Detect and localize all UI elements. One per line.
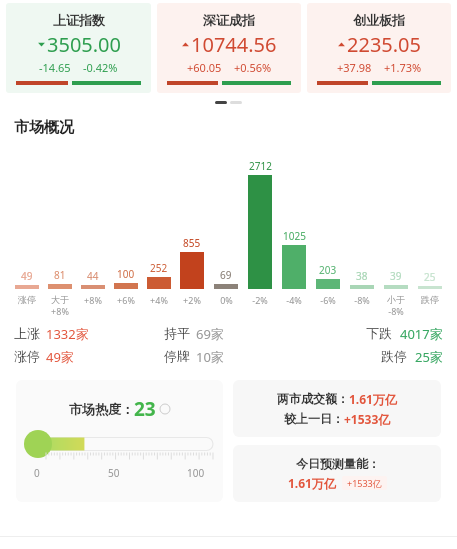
staticText: -8% xyxy=(388,305,404,317)
button[interactable]: 市场热度： xyxy=(16,380,223,502)
staticText: 创业板指 xyxy=(353,12,405,28)
staticText: +8% xyxy=(51,305,69,317)
staticText: -8% xyxy=(354,294,370,306)
staticText: 1025 xyxy=(283,229,306,243)
staticText: 今日预测量能： xyxy=(296,456,380,471)
staticText: -0.42% xyxy=(83,60,118,75)
staticText: 2712 xyxy=(249,159,272,173)
staticText: 3505.00 xyxy=(47,31,121,58)
staticText: 两市成交额： xyxy=(277,391,349,406)
staticText: +1533亿 xyxy=(344,411,391,427)
staticText: 涨停 xyxy=(18,294,36,305)
staticText: 跌停 xyxy=(381,348,407,364)
staticText: 23 xyxy=(134,396,156,422)
staticText: 50 xyxy=(108,466,120,480)
staticText: -4% xyxy=(286,294,302,306)
staticText: 上证指数 xyxy=(53,12,105,28)
staticText: 1332家 xyxy=(46,325,89,343)
staticText: 0 xyxy=(34,466,40,480)
staticText: +1533亿 xyxy=(347,477,382,489)
staticText: 0% xyxy=(220,294,233,306)
staticText: 855 xyxy=(183,236,201,250)
staticText: 上涨 xyxy=(14,325,40,341)
staticText: 25家 xyxy=(415,348,443,366)
staticText: 69家 xyxy=(196,325,224,343)
staticText: +6% xyxy=(117,294,135,306)
staticText: 1.61万亿 xyxy=(349,391,397,407)
staticText: 39 xyxy=(390,269,402,283)
staticText: 203 xyxy=(319,263,337,277)
staticText: 下跌 xyxy=(366,325,392,341)
staticText: 25 xyxy=(424,270,436,284)
staticText: 44 xyxy=(87,269,99,283)
staticText: -2% xyxy=(252,294,268,306)
staticText: -6% xyxy=(320,294,336,306)
staticText: 跌停 xyxy=(421,294,439,305)
staticText: 大于 xyxy=(51,294,69,305)
button[interactable]: 两市成交额： xyxy=(233,380,441,437)
staticText: 10家 xyxy=(196,348,224,366)
staticText: +1.73% xyxy=(384,60,422,75)
staticText: 持平 xyxy=(164,325,190,341)
button[interactable]: 创业板指 xyxy=(307,3,451,93)
staticText: +4% xyxy=(150,294,168,306)
staticText: 49 xyxy=(21,269,33,283)
staticText: 69 xyxy=(220,268,232,282)
staticText: 小于 xyxy=(387,294,405,305)
staticText: +37.98 xyxy=(337,60,372,75)
staticText: 10744.56 xyxy=(191,31,277,58)
staticText: 1.61万亿 xyxy=(288,475,336,491)
staticText: 38 xyxy=(356,269,368,283)
button[interactable]: 上证指数 xyxy=(6,3,151,93)
button[interactable]: 今日预测量能： xyxy=(233,445,441,502)
staticText: 49家 xyxy=(46,348,74,366)
staticText: +2% xyxy=(183,294,201,306)
staticText: +8% xyxy=(84,294,102,306)
staticText: 市场热度： xyxy=(69,401,134,417)
button[interactable]: 深证成指 xyxy=(157,3,301,93)
staticText: -14.65 xyxy=(39,60,71,75)
staticText: 100 xyxy=(187,466,205,480)
staticText: 较上一日： xyxy=(284,411,344,426)
staticText: 涨停 xyxy=(14,348,40,364)
staticText: 市场概况 xyxy=(14,118,74,137)
staticText: 深证成指 xyxy=(203,12,255,28)
staticText: +0.56% xyxy=(234,60,272,75)
other: 说明 xyxy=(160,404,170,414)
staticText: 252 xyxy=(150,261,168,275)
staticText: 2235.05 xyxy=(347,31,421,58)
staticText: +60.05 xyxy=(187,60,222,75)
staticText: 4017家 xyxy=(400,325,443,343)
staticText: 81 xyxy=(54,268,66,282)
staticText: 停牌 xyxy=(164,348,190,364)
staticText: 100 xyxy=(117,267,135,281)
